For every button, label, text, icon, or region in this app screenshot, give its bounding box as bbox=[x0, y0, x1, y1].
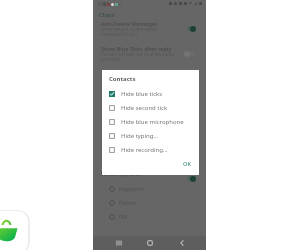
staticText: PIN bbox=[119, 214, 128, 221]
staticText: WhatsApp Lock bbox=[101, 170, 142, 178]
staticText: messages for you bbox=[101, 31, 138, 37]
staticText: Hide typing... bbox=[121, 132, 159, 140]
button[interactable]: App icon bbox=[0, 211, 28, 250]
staticText: Show Blue Ticks after reply bbox=[101, 45, 172, 53]
staticText: Contacts bbox=[109, 75, 136, 83]
button[interactable]: Hide second tick bbox=[102, 104, 199, 118]
button[interactable]: Hide blue microphone bbox=[102, 118, 199, 132]
staticText: you reply bbox=[101, 56, 121, 62]
staticText: OK bbox=[183, 160, 191, 168]
staticText: Hide blue microphone bbox=[121, 118, 184, 126]
button[interactable]: Back bbox=[176, 237, 188, 249]
staticText: Pattern bbox=[119, 200, 136, 207]
staticText: Fingerprint bbox=[119, 186, 145, 193]
button[interactable]: Recent apps bbox=[113, 237, 125, 249]
staticText: Hide recording... bbox=[121, 146, 168, 154]
button[interactable]: Anti-Delete Messages bbox=[93, 21, 206, 44]
button[interactable]: Home bbox=[144, 237, 156, 249]
button[interactable]: Show Blue Ticks after reply bbox=[93, 46, 206, 69]
staticText: Hide second tick bbox=[121, 104, 168, 112]
staticText: Hide blue ticks bbox=[121, 90, 163, 98]
staticText: Contact will only see blue ticks after bbox=[101, 51, 175, 57]
staticText: 17:23 bbox=[97, 1, 109, 7]
staticText: Other people cannot delete bbox=[101, 26, 158, 32]
staticText: Chats bbox=[99, 11, 115, 19]
button[interactable]: OK bbox=[177, 158, 197, 170]
staticText: Anti-Delete Messages bbox=[101, 20, 158, 28]
button[interactable]: Hide typing... bbox=[102, 132, 199, 146]
button[interactable]: Hide recording... bbox=[102, 146, 199, 160]
button[interactable]: WhatsApp Lock bbox=[93, 171, 206, 194]
button[interactable]: Hide blue ticks bbox=[102, 90, 199, 104]
